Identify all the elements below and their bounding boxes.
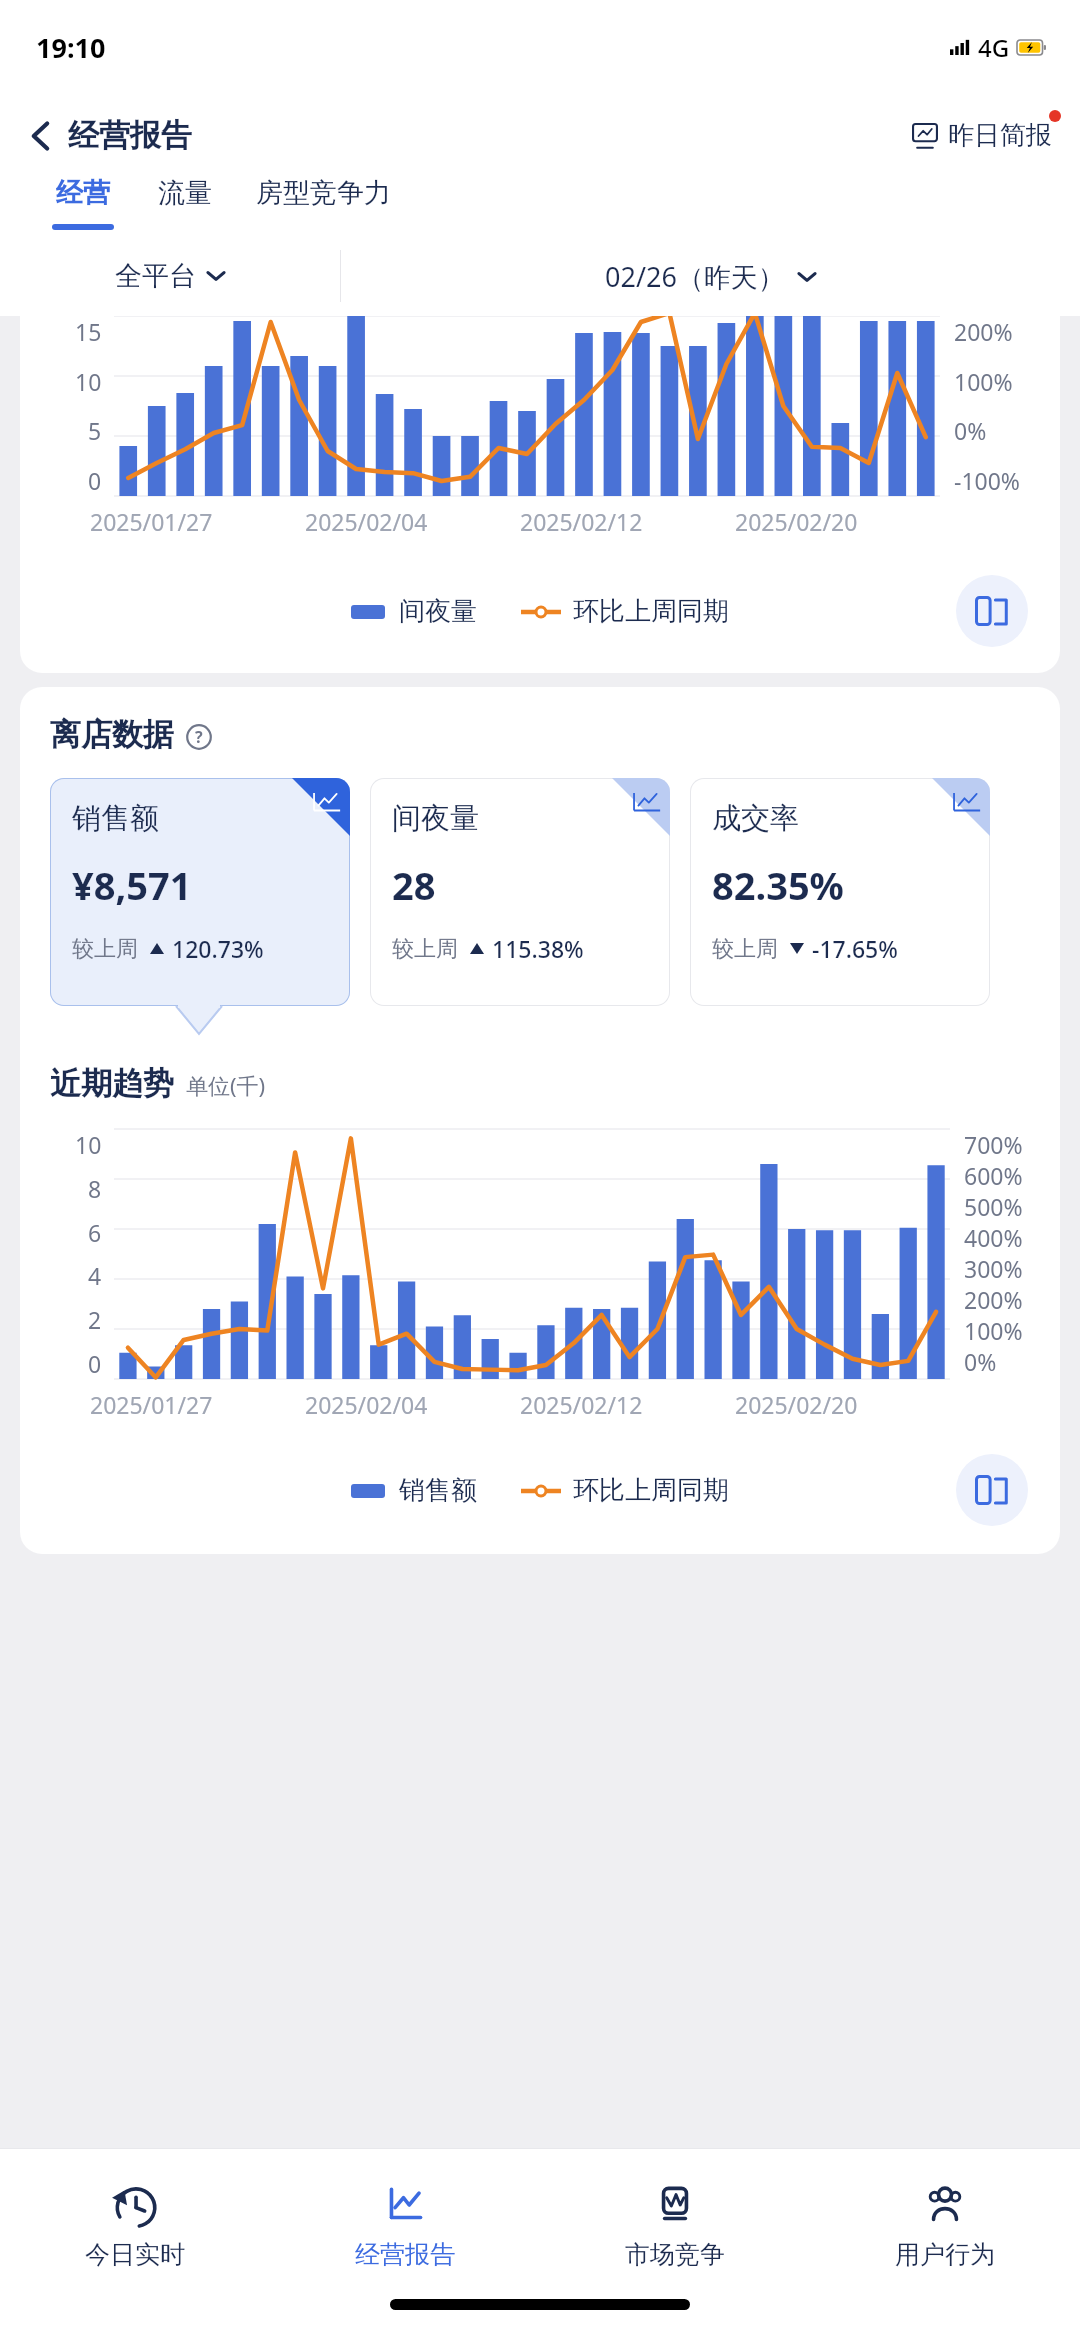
- staticText: 成交率: [712, 800, 799, 837]
- button[interactable]: 销售额: [50, 778, 350, 1006]
- staticText: 销售额: [72, 800, 159, 837]
- staticText: 离店数据: [50, 715, 174, 754]
- staticText: 0: [88, 465, 102, 496]
- button[interactable]: 间夜量: [370, 778, 670, 1006]
- staticText: 82.35%: [712, 859, 844, 911]
- staticText: 2025/01/27: [90, 1389, 213, 1420]
- button[interactable]: 横屏查看: [956, 1454, 1028, 1526]
- staticText: 500%: [964, 1191, 1023, 1222]
- staticText: -100%: [954, 465, 1020, 496]
- staticText: 经营报告: [68, 116, 192, 155]
- staticText: 5: [88, 415, 102, 446]
- staticText: 2025/02/20: [735, 1389, 858, 1420]
- staticText: 19:10: [36, 29, 106, 66]
- staticText: 近期趋势: [50, 1064, 174, 1103]
- staticText: 700%: [964, 1129, 1023, 1160]
- staticText: 100%: [964, 1315, 1023, 1346]
- button[interactable]: 说明: [186, 724, 212, 750]
- staticText: -17.65%: [812, 933, 898, 964]
- staticText: 销售额: [399, 1474, 477, 1507]
- staticText: 流量: [158, 176, 212, 210]
- staticText: 4: [88, 1260, 102, 1291]
- staticText: 10: [75, 1129, 102, 1160]
- staticText: 较上周: [392, 935, 458, 963]
- staticText: 2025/02/04: [305, 1389, 428, 1420]
- button[interactable]: 横屏查看: [956, 575, 1028, 647]
- staticText: 600%: [964, 1160, 1023, 1191]
- staticText: 2025/02/20: [735, 506, 858, 537]
- staticText: 6: [88, 1217, 102, 1248]
- staticText: 2: [88, 1304, 102, 1335]
- staticText: 4G: [978, 31, 1010, 64]
- staticText: 10: [75, 366, 102, 397]
- staticText: 房型竞争力: [256, 176, 391, 210]
- staticText: 300%: [964, 1253, 1023, 1284]
- staticText: 经营: [56, 176, 110, 210]
- button[interactable]: 今日实时: [0, 2149, 270, 2299]
- staticText: 今日实时: [85, 2239, 185, 2270]
- staticText: 2025/02/12: [520, 506, 643, 537]
- staticText: 200%: [954, 316, 1013, 347]
- button[interactable]: 房型竞争力: [234, 176, 413, 236]
- button[interactable]: 流量: [136, 176, 234, 236]
- button[interactable]: 市场竞争: [540, 2149, 810, 2299]
- staticText: ¥8,571: [72, 859, 192, 911]
- staticText: 2025/02/12: [520, 1389, 643, 1420]
- staticText: 间夜量: [399, 595, 477, 628]
- staticText: ?: [195, 726, 203, 748]
- staticText: 间夜量: [392, 800, 479, 837]
- staticText: 02/26（昨天）: [605, 258, 785, 295]
- staticText: 200%: [964, 1284, 1023, 1315]
- staticText: 全平台: [115, 259, 196, 293]
- button[interactable]: 02/26（昨天）: [341, 236, 1080, 316]
- staticText: 市场竞争: [625, 2239, 725, 2270]
- staticText: 0: [88, 1348, 102, 1379]
- staticText: 经营报告: [355, 2239, 455, 2270]
- staticText: 0%: [954, 415, 987, 446]
- staticText: 2025/02/04: [305, 506, 428, 537]
- staticText: 15: [75, 316, 102, 347]
- staticText: 昨日简报: [948, 119, 1052, 152]
- button[interactable]: 经营报告: [270, 2149, 540, 2299]
- button[interactable]: 经营: [30, 176, 136, 236]
- staticText: 较上周: [712, 935, 778, 963]
- button[interactable]: 用户行为: [810, 2149, 1080, 2299]
- staticText: 28: [392, 859, 436, 911]
- staticText: 115.38%: [492, 933, 584, 964]
- staticText: 较上周: [72, 935, 138, 963]
- staticText: 环比上周同期: [573, 1474, 729, 1507]
- button[interactable]: 成交率: [690, 778, 990, 1006]
- staticText: 单位(千): [186, 1070, 266, 1100]
- staticText: 用户行为: [895, 2239, 995, 2270]
- staticText: 环比上周同期: [573, 595, 729, 628]
- staticText: 0%: [964, 1346, 997, 1377]
- staticText: 400%: [964, 1222, 1023, 1253]
- staticText: 100%: [954, 366, 1013, 397]
- staticText: 8: [88, 1173, 102, 1204]
- button[interactable]: 昨日简报: [906, 113, 1058, 158]
- staticText: 2025/01/27: [90, 506, 213, 537]
- button[interactable]: 返回: [22, 110, 200, 161]
- staticText: 120.73%: [172, 933, 264, 964]
- button[interactable]: 全平台: [0, 236, 340, 316]
